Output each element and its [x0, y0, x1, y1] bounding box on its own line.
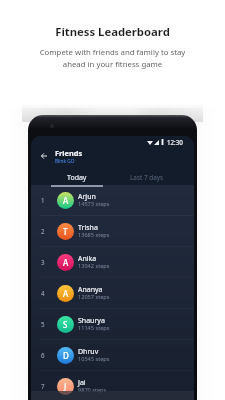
- staticText: 9870 steps: [78, 386, 107, 394]
- staticText: Last 7 days: [130, 173, 164, 182]
- staticText: 6: [41, 351, 45, 359]
- staticText: 2: [41, 227, 45, 235]
- button[interactable]: 4: [31, 278, 194, 309]
- staticText: 3: [41, 258, 45, 266]
- button[interactable]: Back: [37, 149, 51, 163]
- staticText: 12057 steps: [78, 293, 110, 301]
- staticText: S: [63, 319, 68, 330]
- staticText: 13685 steps: [78, 231, 110, 239]
- button[interactable]: 1: [31, 185, 194, 216]
- staticText: A: [63, 288, 69, 299]
- staticText: Jai: [78, 378, 86, 388]
- staticText: Compete with friends and family to stay …: [0, 47, 225, 70]
- staticText: 4: [41, 289, 45, 297]
- staticText: 14573 steps: [78, 200, 110, 208]
- staticText: A: [63, 195, 69, 206]
- staticText: Shaurya: [78, 316, 105, 326]
- staticText: Dhruv: [78, 347, 99, 357]
- button[interactable]: 3: [31, 247, 194, 278]
- button[interactable]: Last 7 days: [121, 172, 173, 185]
- staticText: Fitness Leaderboard: [0, 24, 225, 39]
- button[interactable]: 5: [31, 309, 194, 340]
- staticText: Ananya: [78, 285, 103, 295]
- staticText: Trisha: [78, 223, 98, 233]
- staticText: Blink GO: [55, 158, 75, 165]
- staticText: 5: [41, 320, 45, 328]
- button[interactable]: 7: [31, 371, 194, 400]
- staticText: 1: [41, 196, 45, 204]
- staticText: Anika: [78, 254, 97, 264]
- button[interactable]: Today: [51, 172, 103, 185]
- staticText: 12:30: [167, 138, 183, 146]
- button[interactable]: 6: [31, 340, 194, 371]
- staticText: A: [63, 257, 69, 268]
- staticText: D: [63, 350, 69, 361]
- staticText: Today: [67, 173, 87, 183]
- staticText: 11145 steps: [78, 324, 110, 332]
- staticText: Friends: [55, 148, 83, 158]
- button[interactable]: 2: [31, 216, 194, 247]
- staticText: 10545 steps: [78, 355, 110, 363]
- staticText: Arjun: [78, 192, 96, 202]
- staticText: J: [64, 381, 67, 392]
- staticText: 7: [41, 382, 45, 390]
- staticText: 13042 steps: [78, 262, 110, 270]
- staticText: T: [63, 226, 68, 237]
